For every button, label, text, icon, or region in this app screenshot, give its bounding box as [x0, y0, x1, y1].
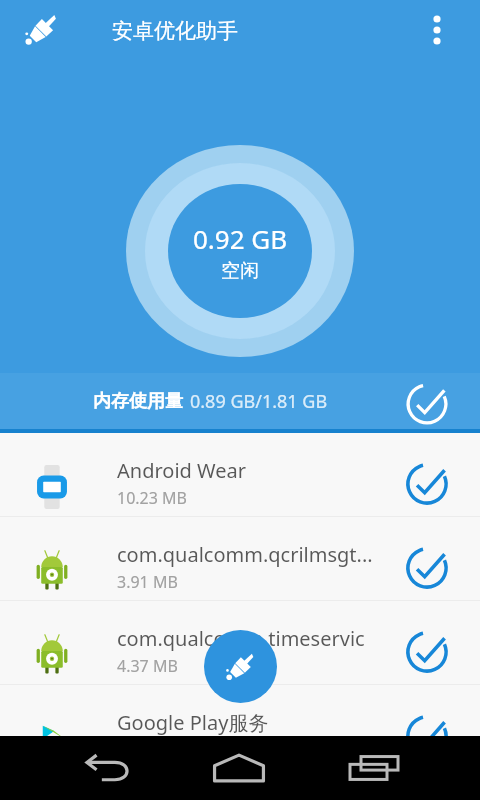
button[interactable]: Clean memory — [374, 373, 480, 429]
button[interactable]: Select app — [384, 433, 480, 516]
staticText: 空闲 — [221, 259, 259, 283]
button[interactable]: Clean — [0, 0, 84, 56]
button[interactable]: com.qualcomm.timeservic — [0, 601, 480, 684]
staticText: 10.23 MB — [117, 487, 187, 509]
staticText: Google Play服务 — [117, 709, 269, 736]
button[interactable]: Google Play服务 — [0, 685, 480, 736]
button[interactable]: More options — [394, 0, 480, 56]
button[interactable]: Select app — [384, 601, 480, 684]
staticText: 安卓优化助手 — [112, 18, 238, 44]
staticText: com.qualcomm.qcrilmsgt... — [117, 541, 373, 568]
button[interactable]: Clean now — [204, 630, 277, 703]
staticText: com.qualcomm.timeservic — [117, 625, 365, 652]
button[interactable]: Select app — [384, 517, 480, 600]
staticText: Android Wear — [117, 457, 247, 484]
staticText: 内存使用量 — [93, 390, 183, 413]
button[interactable]: Select app — [384, 685, 480, 736]
button[interactable]: com.qualcomm.qcrilmsgt... — [0, 517, 480, 600]
staticText: 0.89 GB/1.81 GB — [190, 389, 328, 414]
button[interactable]: Android Wear — [0, 433, 480, 516]
button[interactable]: 内存使用量 — [0, 373, 480, 429]
button[interactable]: Back — [64, 736, 156, 800]
button[interactable]: Home — [193, 736, 285, 800]
staticText: 3.91 MB — [117, 571, 178, 593]
staticText: 4.37 MB — [117, 655, 178, 677]
staticText: 0.92 GB — [193, 221, 288, 256]
button[interactable]: Recent apps — [328, 736, 420, 800]
